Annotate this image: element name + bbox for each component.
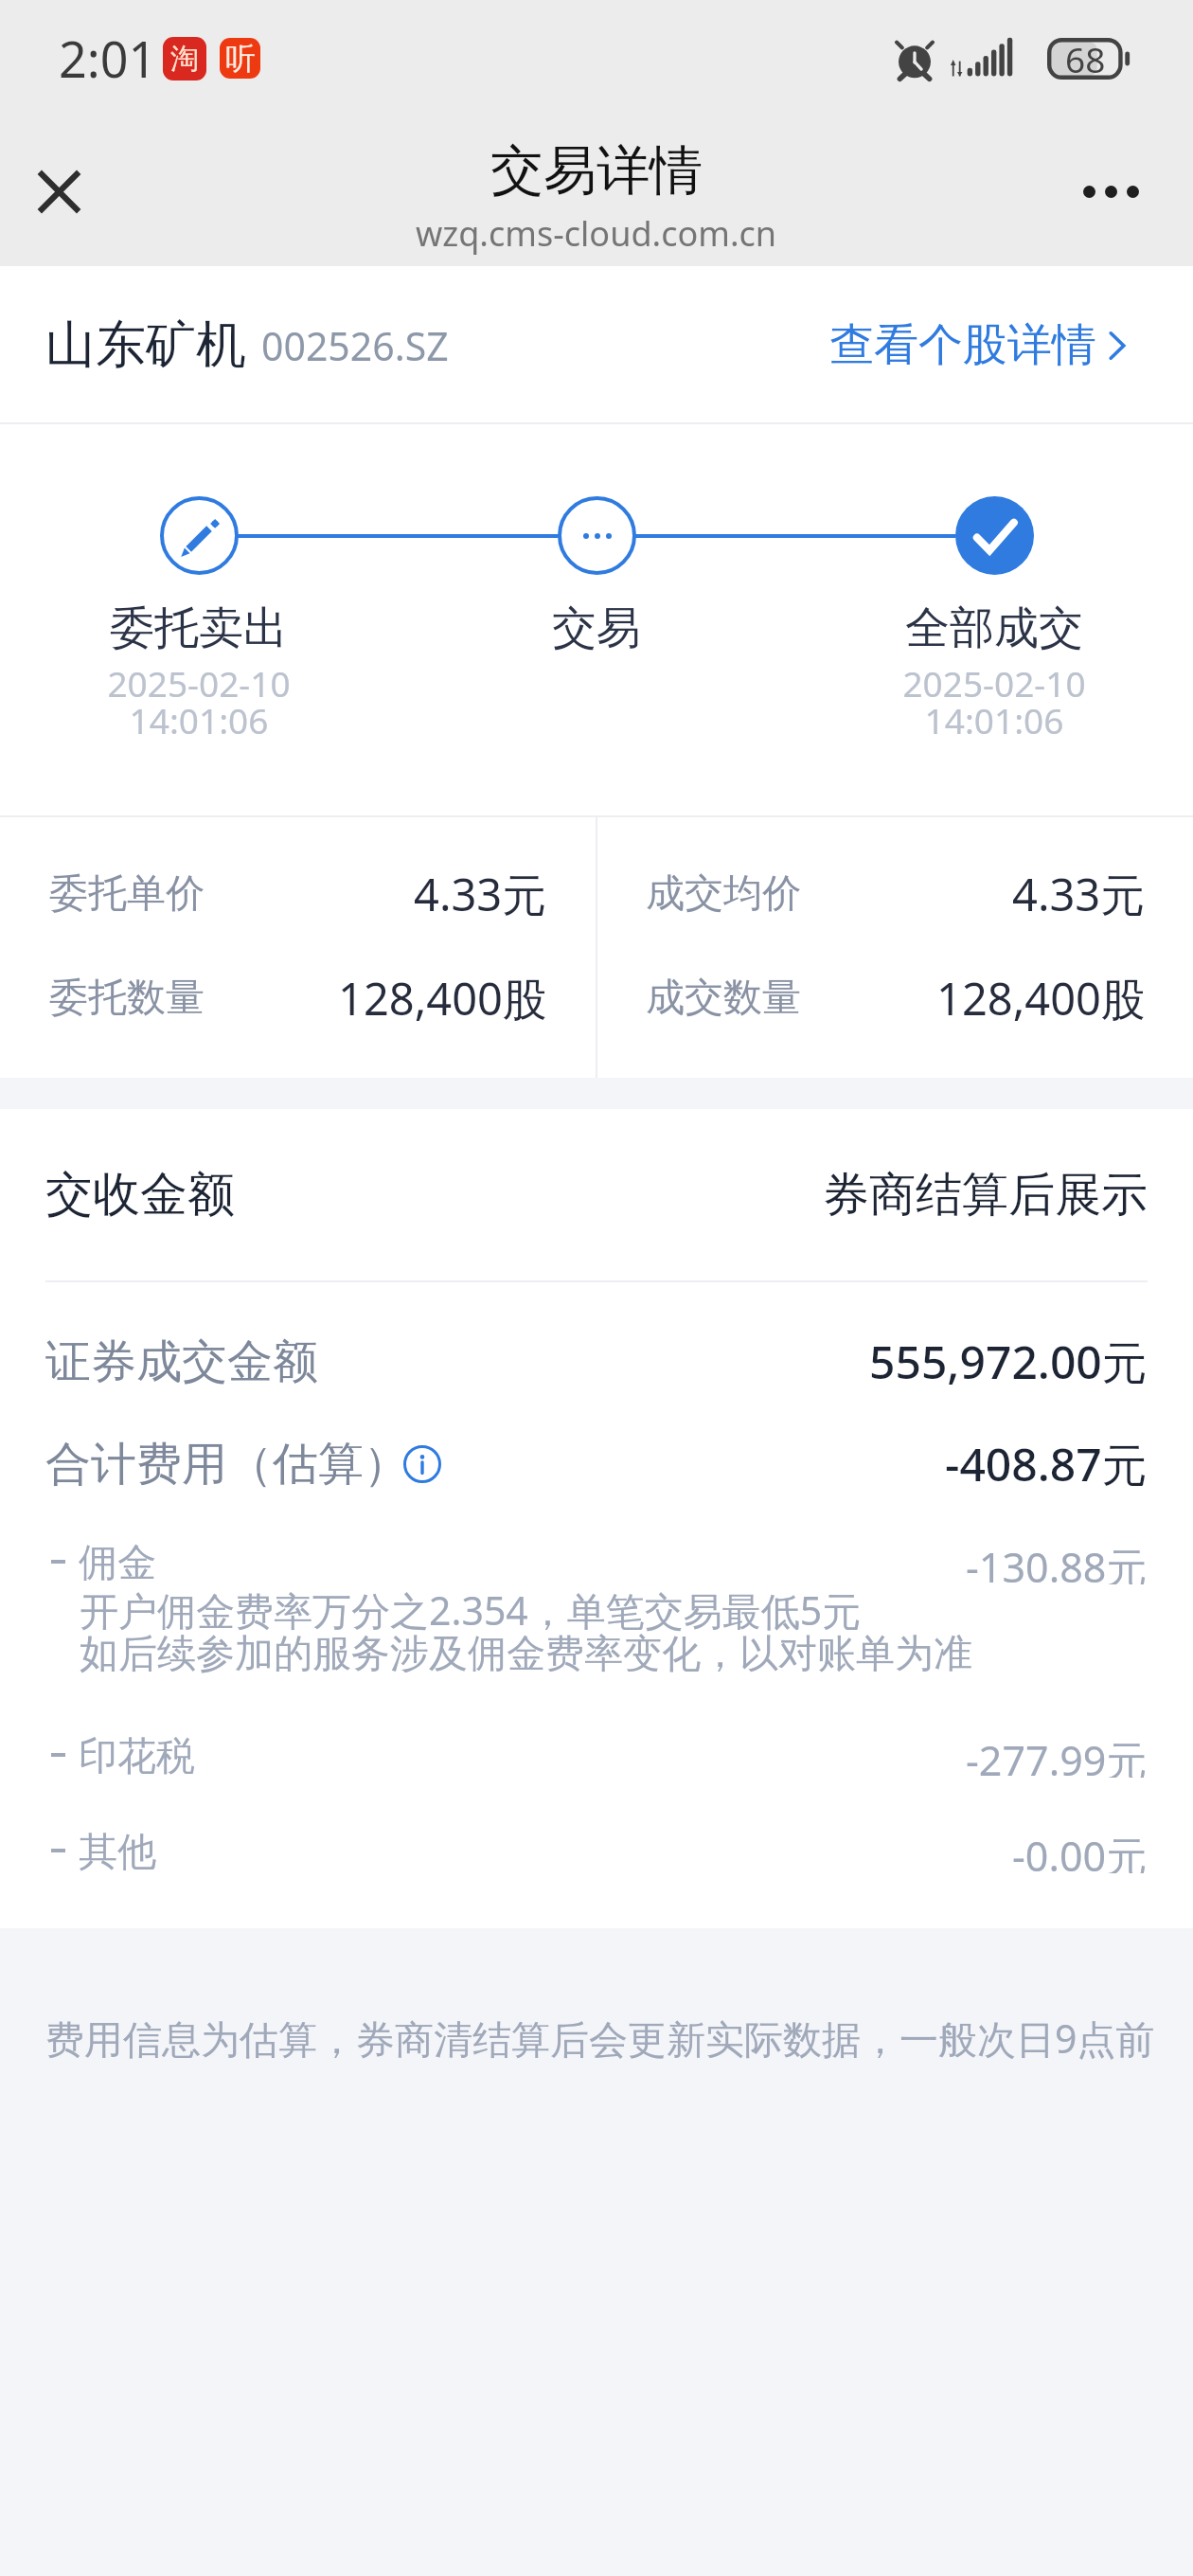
staticText: 委托单价 [49, 869, 205, 919]
staticText: 128,400股 [338, 968, 547, 1029]
button[interactable]: Close [0, 133, 117, 250]
button[interactable]: 查看个股详情 [829, 298, 1136, 392]
staticText: 交收金额 [45, 1165, 235, 1225]
staticText: -408.87元 [945, 1433, 1148, 1495]
staticText: 2025-02-10 14:01:06 [107, 659, 291, 743]
staticText: 山东矿机 [45, 313, 246, 377]
staticText: 听 [225, 40, 256, 78]
staticText: 128,400股 [936, 968, 1146, 1029]
staticText: 佣金 [79, 1539, 156, 1584]
staticText: 4.33元 [1012, 864, 1146, 924]
staticText: 全部成交 [905, 600, 1083, 656]
staticText: wzq.cms-cloud.com.cn [416, 210, 777, 257]
staticText: -277.99元 [966, 1732, 1148, 1778]
button[interactable]: Fee estimate info [396, 1438, 449, 1491]
staticText: 印花税 [79, 1732, 195, 1778]
staticText: 交易详情 [490, 137, 703, 205]
staticText: 证券成交金额 [45, 1333, 318, 1390]
staticText: 查看个股详情 [829, 317, 1096, 373]
staticText: 费用信息为估算，券商清结算后会更新实际数据，一般次日9点前 [45, 2012, 1174, 2065]
staticText: 002526.SZ [261, 319, 449, 372]
staticText: 68 [1065, 35, 1106, 82]
staticText: 4.33元 [414, 864, 547, 924]
staticText: 开户佣金费率万分之2.354，单笔交易最低5元 如后续参加的服务涉及佣金费率变化… [80, 1583, 972, 1678]
staticText: 其他 [79, 1828, 156, 1873]
staticText: 委托卖出 [110, 600, 288, 656]
staticText: 2:01 [59, 25, 157, 92]
staticText: 555,972.00元 [869, 1331, 1148, 1393]
button[interactable]: More options [1052, 133, 1169, 250]
staticText: 委托数量 [49, 974, 205, 1023]
staticText: 淘 [170, 41, 199, 77]
staticText: 合计费用（估算） [45, 1436, 409, 1493]
staticText: 2025-02-10 14:01:06 [902, 659, 1086, 743]
staticText: 交易 [552, 600, 641, 656]
staticText: 券商结算后展示 [823, 1166, 1148, 1225]
staticText: -130.88元 [966, 1539, 1148, 1584]
staticText: 成交数量 [646, 974, 801, 1023]
staticText: 成交均价 [646, 869, 801, 919]
staticText: -0.00元 [1012, 1828, 1148, 1873]
